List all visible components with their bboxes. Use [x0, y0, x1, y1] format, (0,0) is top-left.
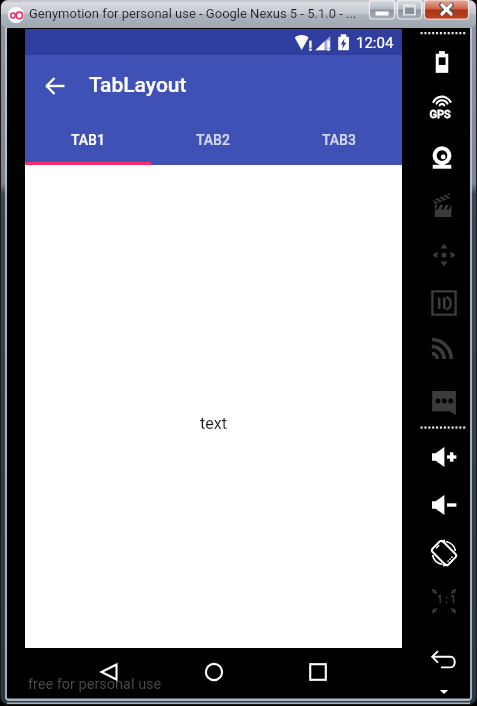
button[interactable]: Back	[91, 654, 127, 690]
button[interactable]: Actual size	[428, 585, 460, 617]
staticText: TAB3	[322, 132, 356, 148]
button[interactable]: Minimize	[368, 0, 396, 20]
button[interactable]: TAB2	[150, 113, 276, 165]
button[interactable]: TAB3	[276, 113, 402, 165]
staticText: Genymotion for personal use - Google Nex…	[29, 6, 357, 21]
button[interactable]: Volume up	[428, 441, 460, 473]
button[interactable]: Screen recording	[427, 190, 459, 222]
button[interactable]: GPS	[426, 93, 458, 125]
button[interactable]: Navigate up	[37, 68, 73, 104]
staticText: 12:04	[356, 34, 394, 52]
button[interactable]: Messages	[428, 381, 460, 413]
staticText: text	[200, 414, 227, 433]
staticText: TabLayout	[89, 73, 187, 98]
button[interactable]: Rotate	[428, 537, 460, 569]
button[interactable]: Navigation pad	[428, 239, 460, 271]
button[interactable]: Back	[428, 645, 460, 677]
button[interactable]: Recent apps	[300, 654, 336, 690]
staticText: 1 : 1	[437, 594, 456, 606]
staticText: TAB2	[196, 132, 230, 148]
button[interactable]: Camera	[426, 142, 458, 174]
button[interactable]: Home	[196, 654, 232, 690]
button[interactable]: Battery	[426, 46, 458, 78]
button[interactable]: Network	[426, 333, 458, 365]
button[interactable]: TAB1	[25, 113, 150, 165]
button[interactable]: Volume down	[428, 489, 460, 521]
staticText: GPS	[429, 108, 451, 121]
button[interactable]: More controls	[428, 676, 460, 706]
staticText: free for personal use	[28, 676, 162, 693]
button[interactable]: Identifiers	[428, 287, 460, 319]
button[interactable]: Maximize	[396, 0, 423, 20]
staticText: TAB1	[71, 132, 105, 148]
button[interactable]: Close	[423, 0, 470, 20]
